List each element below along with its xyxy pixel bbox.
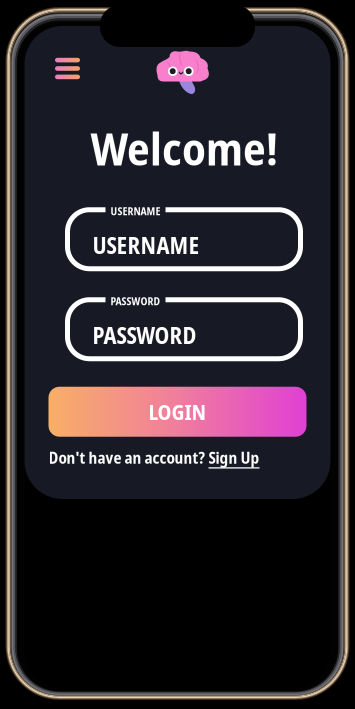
staticText: PASSWORD bbox=[110, 294, 160, 308]
button[interactable]: Sign Up bbox=[208, 447, 259, 468]
staticText: Welcome! bbox=[91, 117, 278, 179]
button[interactable]: LOGIN bbox=[48, 387, 306, 437]
staticText: LOGIN bbox=[148, 397, 206, 426]
button[interactable]: Menu bbox=[52, 54, 82, 82]
staticText: USERNAME bbox=[110, 204, 160, 218]
staticText: PASSWORD bbox=[92, 320, 196, 351]
staticText: Sign Up bbox=[208, 447, 259, 468]
staticText: Don't have an account? bbox=[48, 447, 204, 468]
staticText: USERNAME bbox=[92, 230, 199, 261]
